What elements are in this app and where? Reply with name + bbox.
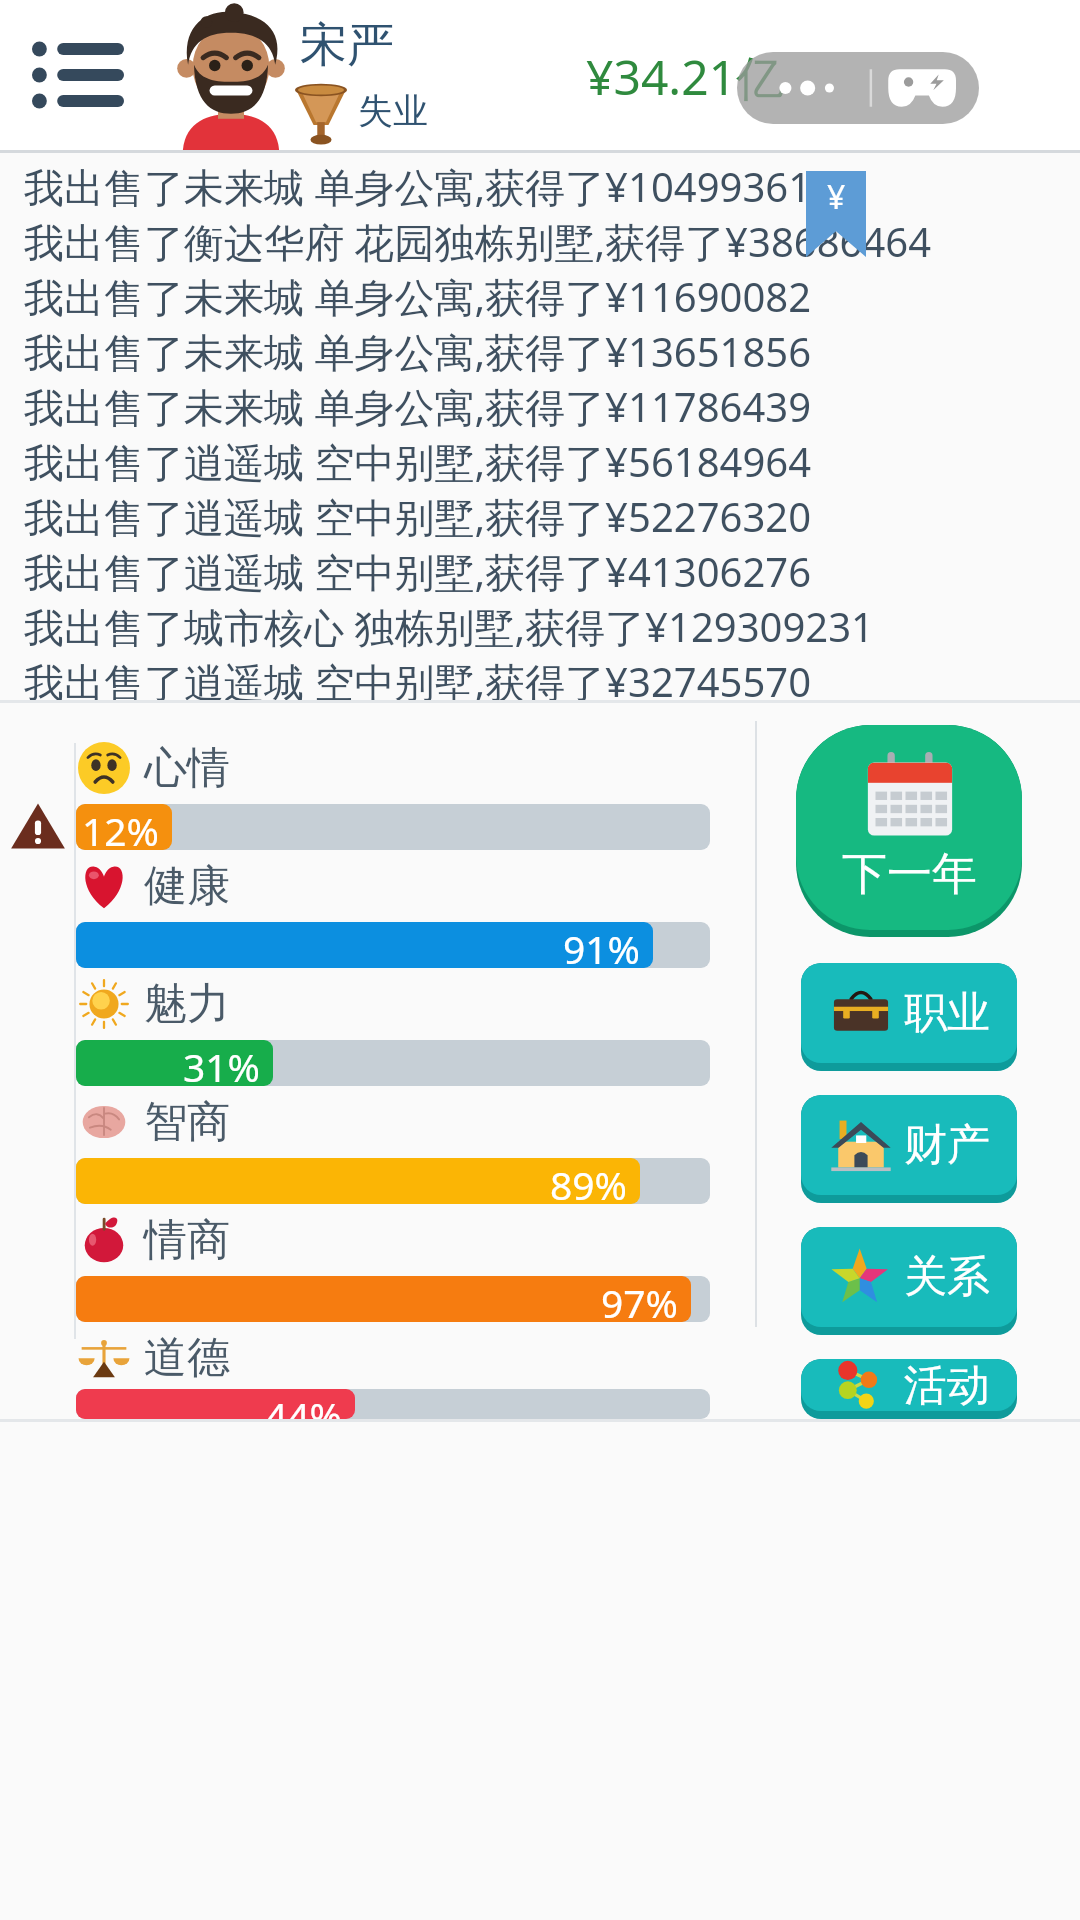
staticText: 我出售了未来城 单身公寓,获得了¥11786439 [24, 379, 812, 434]
button[interactable]: 情商 [0, 1209, 755, 1327]
button[interactable]: Avatar [166, 8, 296, 150]
button[interactable]: 健康 [0, 855, 755, 973]
staticText: 健康 [144, 859, 230, 913]
staticText: 宋严 [300, 16, 394, 75]
staticText: 44% [265, 1389, 343, 1419]
button[interactable]: 职业 [801, 963, 1017, 1063]
staticText: 12% [82, 804, 160, 850]
staticText: 31% [183, 1040, 261, 1086]
staticText: 我出售了未来城 单身公寓,获得了¥13651856 [24, 324, 812, 379]
button[interactable]: 活动 [801, 1359, 1017, 1411]
staticText: 情商 [144, 1213, 230, 1267]
staticText: 职业 [904, 986, 990, 1040]
staticText: ¥34.21亿 [586, 44, 785, 110]
button[interactable]: Game assistant [737, 52, 979, 124]
staticText: 89% [550, 1158, 628, 1204]
staticText: 我出售了逍遥城 空中别墅,获得了¥32745570 [24, 654, 812, 700]
button[interactable]: 关系 [801, 1227, 1017, 1327]
button[interactable]: 魅力 [0, 973, 755, 1091]
staticText: 财产 [904, 1118, 990, 1172]
button[interactable]: 心情 [0, 737, 755, 855]
button[interactable]: 道德 [0, 1327, 755, 1419]
button[interactable]: 财产 [801, 1095, 1017, 1195]
staticText: 我出售了未来城 单身公寓,获得了¥11690082 [24, 269, 812, 324]
staticText: 关系 [904, 1250, 990, 1304]
staticText: 我出售了逍遥城 空中别墅,获得了¥41306276 [24, 544, 812, 599]
staticText: 魅力 [144, 977, 230, 1031]
staticText: ¥ [827, 175, 846, 219]
button[interactable]: 智商 [0, 1091, 755, 1209]
staticText: 我出售了城市核心 独栋别墅,获得了¥129309231 [24, 599, 874, 654]
staticText: 心情 [144, 741, 230, 795]
button[interactable]: Menu [22, 19, 134, 131]
staticText: 失业 [358, 89, 428, 133]
staticText: 道德 [144, 1331, 230, 1385]
staticText: 97% [601, 1276, 679, 1322]
staticText: 下一年 [842, 846, 977, 903]
staticText: 我出售了逍遥城 空中别墅,获得了¥52276320 [24, 489, 812, 544]
staticText: 我出售了逍遥城 空中别墅,获得了¥56184964 [24, 434, 812, 489]
staticText: 智商 [144, 1095, 230, 1149]
button[interactable]: 下一年 [796, 725, 1022, 930]
staticText: 活动 [904, 1359, 990, 1411]
staticText: 91% [563, 922, 641, 968]
staticText: 我出售了衡达华府 花园独栋别墅,获得了¥38686464 [24, 214, 932, 269]
staticText: 我出售了未来城 单身公寓,获得了¥10499361 [24, 159, 812, 214]
